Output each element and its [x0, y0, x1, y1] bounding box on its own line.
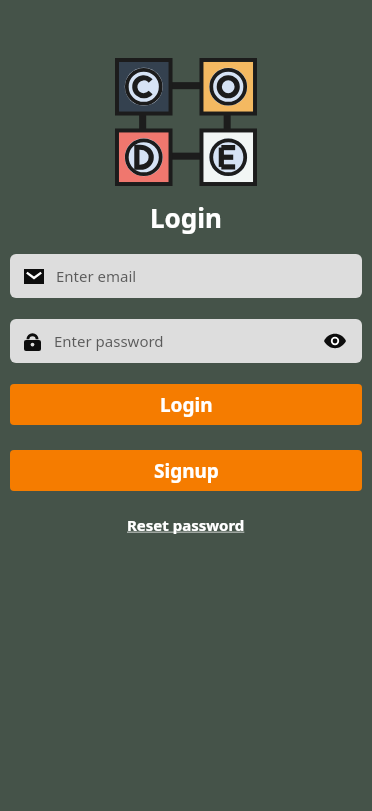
button[interactable]: Enter password [10, 319, 362, 363]
staticText: Enter email [56, 266, 137, 286]
button[interactable]: Show password [322, 328, 348, 354]
button[interactable]: Reset password [121, 513, 251, 537]
button[interactable]: Login [10, 384, 362, 425]
button[interactable]: Enter email [10, 254, 362, 298]
staticText: Login [150, 200, 222, 235]
staticText: Login [160, 392, 213, 418]
staticText: Enter password [54, 331, 322, 351]
staticText: Signup [154, 458, 219, 484]
staticText: Reset password [127, 515, 245, 535]
button[interactable]: Signup [10, 450, 362, 491]
